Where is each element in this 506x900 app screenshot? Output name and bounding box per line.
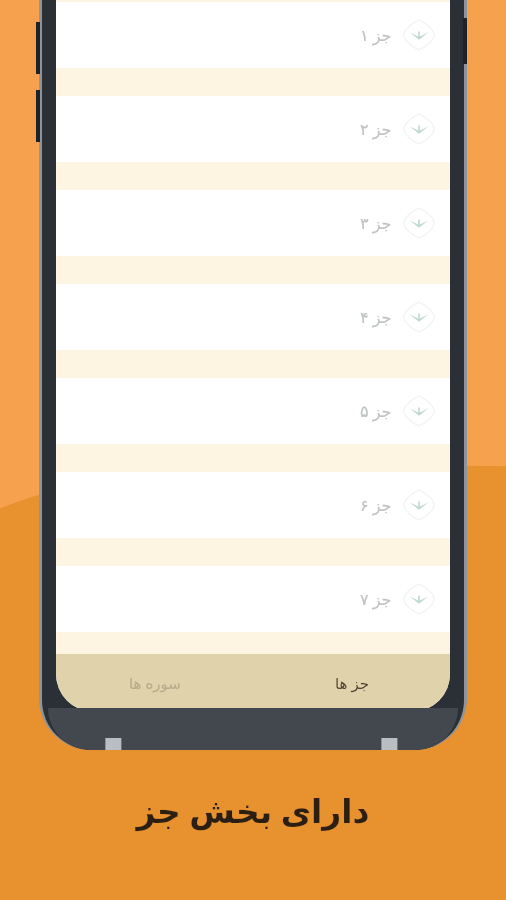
staticText: جز ۴: [360, 306, 392, 328]
other: Juz: [402, 18, 436, 52]
staticText: جز ۷: [360, 588, 392, 610]
staticText: جز ۲: [360, 118, 392, 140]
other: Juz: [402, 394, 436, 428]
staticText: جز ۳: [360, 212, 392, 234]
staticText: سوره ها: [129, 673, 181, 693]
other: Juz: [402, 488, 436, 522]
other: Juz: [402, 112, 436, 146]
staticText: دارای بخش جز: [0, 788, 506, 833]
other: Juz: [402, 206, 436, 240]
other: Juz: [402, 300, 436, 334]
other: Juz: [402, 582, 436, 616]
staticText: جز ۶: [360, 494, 392, 516]
button[interactable]: جز ۵: [56, 378, 450, 444]
button[interactable]: سوره ها: [56, 654, 253, 712]
staticText: جز ها: [335, 673, 369, 693]
button[interactable]: جز ۶: [56, 472, 450, 538]
button[interactable]: جز ۷: [56, 566, 450, 632]
button[interactable]: جز ۲: [56, 96, 450, 162]
staticText: جز ۱: [360, 24, 392, 46]
button[interactable]: جز ها: [253, 654, 450, 712]
button[interactable]: جز ۴: [56, 284, 450, 350]
button[interactable]: جز ۱: [56, 2, 450, 68]
button[interactable]: جز ۳: [56, 190, 450, 256]
staticText: جز ۵: [360, 400, 392, 422]
